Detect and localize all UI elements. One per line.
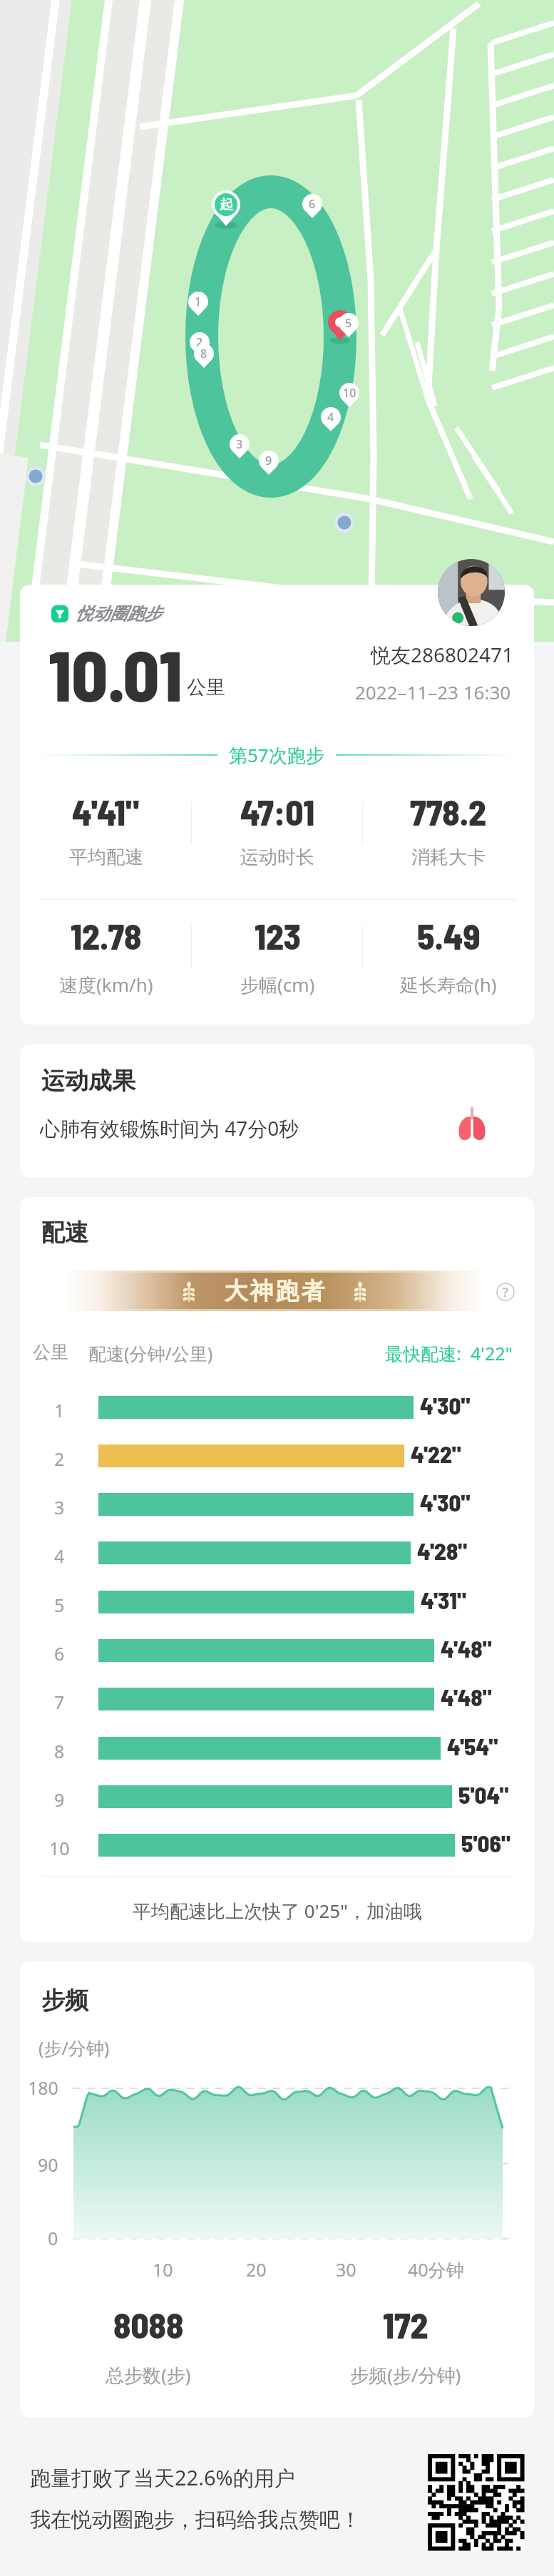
staticText: 4'22" xyxy=(471,1341,513,1365)
button[interactable]: 帮助说明 xyxy=(496,1283,515,1301)
staticText: 40分钟 xyxy=(408,2257,464,2282)
staticText: 20 xyxy=(246,2257,267,2282)
staticText: 30 xyxy=(336,2257,356,2282)
staticText: 4'30" xyxy=(420,1488,471,1517)
staticText: 4 xyxy=(54,1544,65,1568)
staticText: 运动成果 xyxy=(41,1066,135,1096)
staticText: 总步数(步) xyxy=(106,2362,191,2388)
staticText: 平均配速比上次快了 0'25"，加油哦 xyxy=(133,1898,422,1924)
staticText: 2 xyxy=(54,1447,65,1471)
staticText: 配速 xyxy=(41,1218,88,1248)
staticText: 第57次跑步 xyxy=(229,742,324,768)
staticText: 4'48" xyxy=(441,1683,492,1711)
staticText: 5'04" xyxy=(458,1780,509,1809)
staticText: 2022–11–23 16:30 xyxy=(355,679,511,704)
staticText: 9 xyxy=(265,453,272,468)
staticText: 10 xyxy=(153,2257,173,2282)
button[interactable]: 大神跑者 xyxy=(66,1271,483,1311)
staticText: 123 xyxy=(255,915,301,957)
staticText: 8 xyxy=(54,1739,65,1763)
staticText: 6 xyxy=(54,1641,65,1666)
staticText: 7 xyxy=(54,1690,65,1714)
staticText: 1 xyxy=(54,1398,65,1422)
button[interactable]: 用户头像 xyxy=(438,559,505,626)
staticText: 3 xyxy=(54,1495,65,1519)
staticText: 配速(分钟/公里) xyxy=(88,1341,213,1365)
staticText: 消耗大卡 xyxy=(411,846,486,869)
staticText: 8 xyxy=(200,346,207,361)
staticText: 起 xyxy=(220,196,233,213)
staticText: 步幅(cm) xyxy=(240,972,315,997)
staticText: 2 xyxy=(196,334,203,350)
staticText: 公里 xyxy=(187,675,225,699)
staticText: 12.78 xyxy=(71,915,142,957)
staticText: 运动时长 xyxy=(240,846,314,869)
staticText: 步频 xyxy=(41,1986,88,2016)
staticText: 4'22" xyxy=(411,1440,461,1468)
staticText: 6 xyxy=(309,196,316,212)
staticText: 1 xyxy=(195,294,202,309)
staticText: 3 xyxy=(236,436,243,452)
staticText: 跑量打败了当天22.6%的用户 xyxy=(30,2463,295,2492)
staticText: 9 xyxy=(54,1787,65,1812)
staticText: 47:01 xyxy=(240,791,315,833)
staticText: (步/分钟) xyxy=(39,2036,110,2060)
staticText: 0 xyxy=(48,2226,58,2250)
staticText: 4'28" xyxy=(417,1536,468,1565)
staticText: 10 xyxy=(49,1836,70,1860)
staticText: 大神跑者 xyxy=(223,1276,326,1306)
staticText: 10 xyxy=(343,385,356,401)
staticText: 速度(km/h) xyxy=(59,972,153,997)
staticText: 4'41" xyxy=(72,791,140,833)
staticText: 5'06" xyxy=(461,1829,511,1857)
staticText: ? xyxy=(503,1283,508,1301)
staticText: 4'54" xyxy=(447,1732,498,1760)
staticText: 8088 xyxy=(113,2304,184,2346)
staticText: 步频(步/分钟) xyxy=(350,2362,461,2388)
staticText: 我在悦动圈跑步，扫码给我点赞吧！ xyxy=(30,2507,361,2533)
staticText: 5 xyxy=(345,315,352,331)
staticText: 最快配速: xyxy=(385,1341,471,1365)
staticText: 5.49 xyxy=(417,915,481,957)
staticText: 172 xyxy=(383,2304,429,2346)
staticText: 平均配速 xyxy=(69,846,143,869)
staticText: 4 xyxy=(327,409,334,425)
staticText: 4'31" xyxy=(421,1586,466,1614)
staticText: 公里 xyxy=(33,1341,68,1363)
staticText: 4'30" xyxy=(420,1391,471,1420)
staticText: 90 xyxy=(38,2152,58,2177)
staticText: 延长寿命(h) xyxy=(400,972,497,997)
staticText: 心肺有效锻炼时间为 47分0秒 xyxy=(40,1114,299,1141)
staticText: 悦动圈跑步 xyxy=(76,603,161,625)
staticText: 5 xyxy=(54,1593,65,1617)
staticText: 180 xyxy=(28,2075,58,2100)
staticText: 4'48" xyxy=(441,1634,492,1663)
staticText: 悦友286802471 xyxy=(371,641,514,668)
staticText: 778.2 xyxy=(410,791,487,833)
staticText: 10.01 xyxy=(48,631,183,716)
